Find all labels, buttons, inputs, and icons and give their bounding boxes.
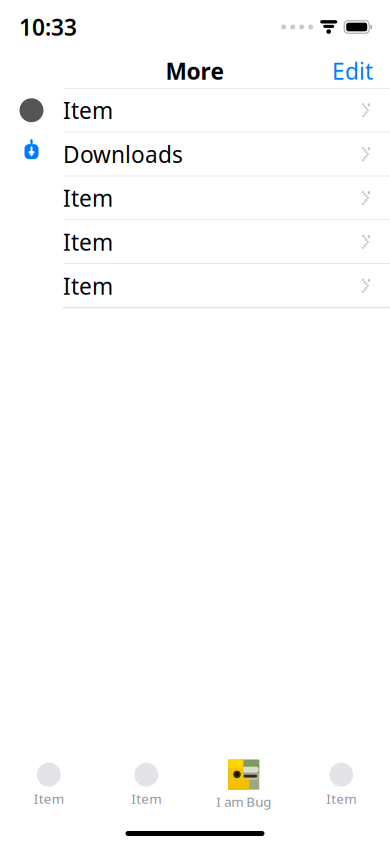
staticText: 10:33 (19, 12, 77, 42)
staticText: Downloads (63, 139, 183, 169)
button[interactable]: I am Bug (195, 756, 292, 814)
staticText: Item (63, 183, 113, 213)
button[interactable]: Downloads (0, 132, 390, 176)
button[interactable]: Item (0, 176, 390, 220)
button[interactable]: Item (0, 220, 390, 264)
staticText: More (165, 56, 224, 86)
staticText: Item (63, 271, 113, 301)
button[interactable]: Item (0, 759, 97, 811)
staticText: Item (34, 790, 64, 807)
staticText: I am Bug (216, 793, 271, 810)
staticText: Item (131, 790, 161, 807)
staticText: Edit (332, 56, 373, 86)
staticText: Item (326, 790, 356, 807)
button[interactable]: Item (0, 264, 390, 307)
button[interactable]: Item (97, 759, 195, 811)
staticText: Item (63, 227, 113, 257)
button[interactable]: Item (0, 89, 390, 132)
button[interactable]: Item (292, 759, 390, 811)
button[interactable]: Edit (324, 49, 381, 93)
staticText: Item (63, 95, 113, 125)
